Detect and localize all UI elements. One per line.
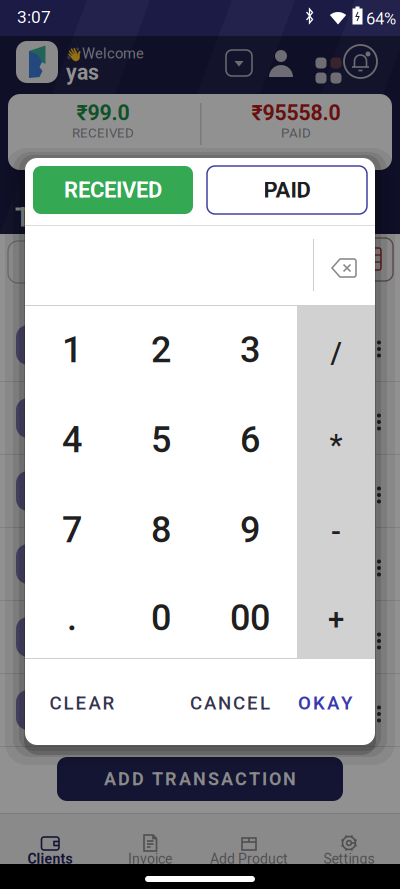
button[interactable]: 9 [205, 486, 295, 574]
button[interactable]: Search [8, 241, 345, 283]
button[interactable]: 6 [205, 396, 295, 484]
button[interactable]: Apps [308, 50, 334, 76]
button[interactable]: 00 [205, 574, 295, 662]
button[interactable]: 1 [27, 306, 117, 394]
staticText: PAID [281, 125, 311, 141]
button[interactable]: More options [377, 553, 381, 570]
staticText: + [328, 602, 344, 636]
button[interactable]: Profile [266, 48, 296, 78]
button[interactable]: Notifications [344, 45, 377, 78]
staticText: 3:07 [17, 7, 51, 27]
button[interactable]: + [297, 575, 375, 663]
button[interactable]: PAID [207, 166, 367, 214]
button[interactable]: O K A Y [290, 683, 360, 723]
button[interactable]: 7 [27, 486, 117, 574]
staticText: yas [66, 60, 99, 85]
staticText: 1 [62, 329, 82, 371]
button[interactable]: / [297, 309, 375, 397]
button[interactable]: More options [377, 699, 381, 716]
staticText: Add Product [210, 851, 288, 867]
staticText: Clients [27, 851, 72, 867]
button[interactable]: Settings [309, 821, 389, 861]
staticText: 9 [240, 509, 260, 551]
staticText: Transactions [15, 203, 164, 233]
staticText: C L E A R [49, 692, 114, 714]
staticText: 2 [151, 329, 171, 371]
staticText: ₹99.0 [76, 100, 129, 125]
staticText: / [330, 336, 341, 370]
button[interactable]: Add Product [209, 821, 289, 861]
staticText: 0 [151, 597, 171, 639]
staticText: Welcome [82, 45, 144, 62]
button[interactable]: 3 [205, 306, 295, 394]
staticText: . [67, 597, 77, 639]
staticText: 00 [230, 597, 270, 639]
button[interactable]: 4 [27, 396, 117, 484]
button[interactable]: More options [377, 480, 381, 497]
button[interactable]: 8 [116, 486, 206, 574]
button[interactable]: C L E A R [42, 683, 122, 723]
button[interactable]: Clients [10, 821, 90, 861]
staticText: 8 [151, 509, 171, 551]
staticText: O K A Y [298, 692, 352, 714]
staticText: Settings [323, 851, 374, 867]
staticText: C A N C E L [190, 692, 270, 714]
staticText: 👋 [66, 47, 83, 63]
button[interactable]: C A N C E L [185, 683, 275, 723]
staticText: 64% [366, 9, 396, 28]
staticText: RECEIVED [72, 125, 134, 141]
button[interactable]: 5 [116, 396, 206, 484]
staticText: RECEIVED [64, 177, 162, 203]
button[interactable]: Invoice [110, 821, 190, 861]
button[interactable]: Backspace [331, 258, 357, 278]
staticText: 6 [240, 419, 260, 461]
button[interactable]: - [297, 488, 375, 576]
button[interactable]: . [27, 574, 117, 662]
staticText: 7 [62, 509, 82, 551]
button[interactable]: A D D T R A N S A C T I O N [57, 757, 343, 801]
staticText: 5 [151, 419, 171, 461]
button[interactable]: * [297, 401, 375, 489]
staticText: 4 [62, 419, 82, 461]
button[interactable]: Select company [226, 50, 252, 76]
button[interactable]: 0 [116, 574, 206, 662]
staticText: ₹95558.0 [251, 100, 340, 125]
staticText: PAID [263, 177, 310, 203]
staticText: A D D T R A N S A C T I O N [104, 768, 296, 790]
staticText: - [331, 515, 341, 549]
button[interactable]: More options [377, 407, 381, 424]
button[interactable]: More options [377, 334, 381, 351]
staticText: * [329, 428, 342, 462]
button[interactable]: More options [377, 626, 381, 643]
button[interactable]: 2 [116, 306, 206, 394]
button[interactable]: RECEIVED [33, 166, 193, 214]
button[interactable]: Export PDF [352, 238, 393, 281]
staticText: 3 [240, 329, 260, 371]
staticText: Invoice [128, 851, 172, 867]
